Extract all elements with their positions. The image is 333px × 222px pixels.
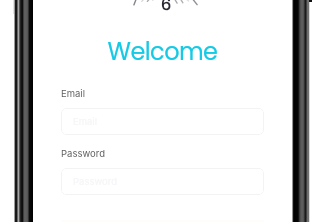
staticText: Email xyxy=(61,88,85,99)
staticText: 6 xyxy=(161,0,172,15)
staticText: Welcome xyxy=(33,35,292,69)
staticText: Email xyxy=(73,116,97,127)
staticText: Password xyxy=(61,148,105,159)
button[interactable]: Password xyxy=(61,168,264,195)
staticText: Password xyxy=(73,176,117,187)
button[interactable]: Email xyxy=(61,108,264,135)
